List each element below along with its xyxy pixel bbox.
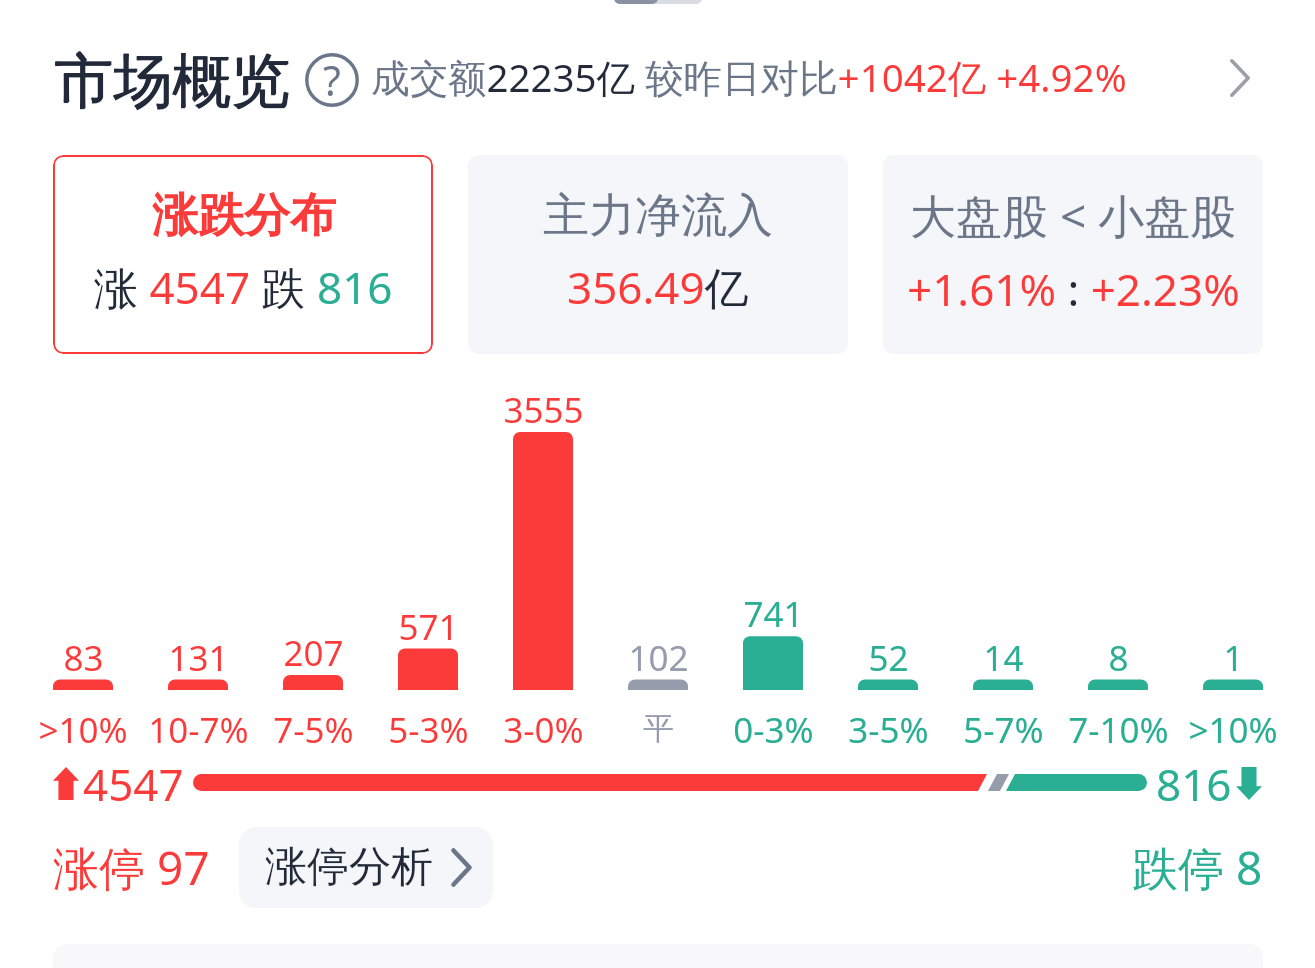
staticText: +1.61% : +2.23% xyxy=(907,259,1240,319)
button[interactable]: 大盘股 < 小盘股 xyxy=(883,155,1263,354)
staticText: 7-10% xyxy=(1068,706,1169,754)
staticText: 131 xyxy=(168,634,229,682)
staticText: 3555 xyxy=(503,386,584,434)
staticText: 14 xyxy=(983,634,1024,682)
button[interactable]: 主力净流入 xyxy=(468,155,848,354)
staticText: 83 xyxy=(63,634,104,682)
staticText: 0-3% xyxy=(733,706,814,754)
staticText: 741 xyxy=(743,590,804,638)
staticText: 市场概览 xyxy=(54,45,290,111)
staticText: 1 xyxy=(1223,634,1244,682)
other: Advancing xyxy=(53,767,79,800)
staticText: 207 xyxy=(283,629,344,677)
staticText: >10% xyxy=(38,706,128,754)
staticText: 市场概览 xyxy=(55,44,291,110)
staticText: 10-7% xyxy=(148,706,249,754)
staticText: ? xyxy=(323,52,341,106)
staticText: 涨停 97 xyxy=(53,836,210,899)
staticText: 大盘股 < 小盘股 xyxy=(910,184,1237,247)
button[interactable]: 涨停分析 xyxy=(239,827,493,908)
staticText: 52 xyxy=(868,634,909,682)
button[interactable]: 涨跌分布 xyxy=(53,155,433,354)
staticText: 8 xyxy=(1108,634,1129,682)
staticText: 4547 xyxy=(83,754,184,812)
button[interactable]: 市场概览 xyxy=(54,44,1265,110)
other: More xyxy=(1230,59,1250,97)
staticText: 3-5% xyxy=(848,706,929,754)
staticText: 主力净流入 xyxy=(543,187,773,245)
staticText: 平 xyxy=(643,709,674,748)
staticText: 涨跌分布 xyxy=(152,187,336,245)
staticText: 356.49亿 xyxy=(567,257,749,317)
staticText: 571 xyxy=(398,603,459,651)
other: Help xyxy=(305,53,359,107)
staticText: 102 xyxy=(628,634,689,682)
staticText: 816 xyxy=(1156,754,1232,812)
other: Declining xyxy=(1236,767,1262,800)
staticText: 3-0% xyxy=(503,706,584,754)
staticText: 跌停 8 xyxy=(1132,836,1263,899)
staticText: >10% xyxy=(1188,706,1278,754)
staticText: 5-7% xyxy=(963,706,1044,754)
staticText: 涨停分析 xyxy=(265,841,433,894)
staticText: 7-5% xyxy=(273,706,354,754)
staticText: 市场概览 xyxy=(54,44,290,110)
staticText: 涨 4547 跌 816 xyxy=(94,257,393,317)
staticText: 5-3% xyxy=(388,706,469,754)
staticText: 成交额22235亿 较昨日对比+1042亿 +4.92% xyxy=(371,51,1127,104)
button[interactable]: Gain loss distribution chart xyxy=(40,380,1275,750)
